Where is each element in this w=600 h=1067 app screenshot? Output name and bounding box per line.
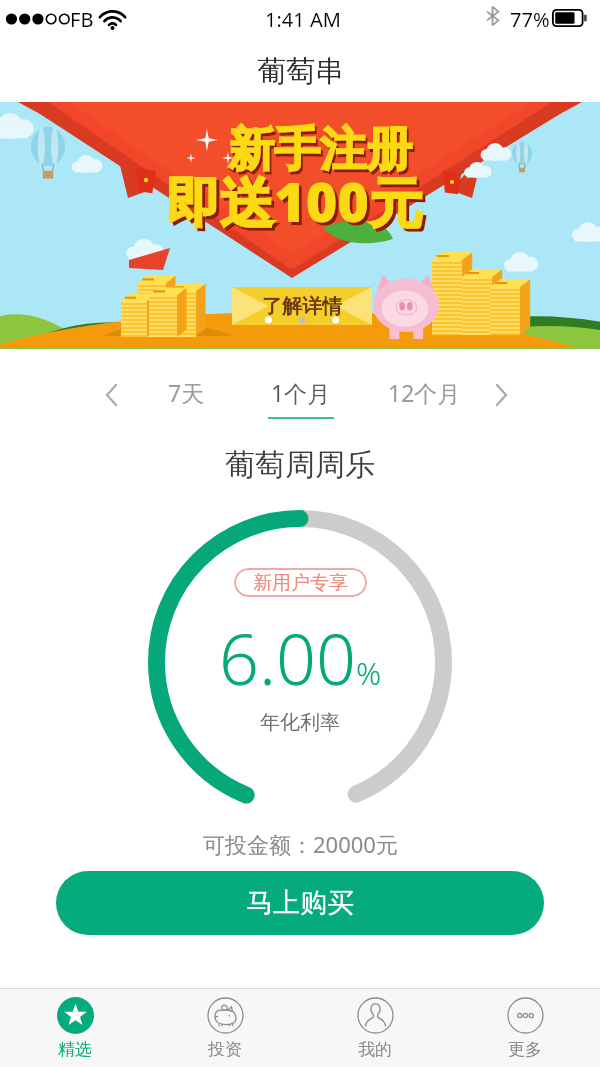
staticText: % [356,652,382,694]
staticText: 年化利率 [260,710,340,735]
button[interactable]: 7天 [141,372,231,428]
staticText: FB [70,6,94,33]
staticText: 6.00 [219,610,356,705]
button[interactable]: Previous [87,372,135,418]
button[interactable]: 我的 [300,989,450,1067]
staticText: 77% [510,6,550,33]
staticText: 12个月 [388,377,461,408]
staticText: 1:41 AM [265,6,341,33]
staticText: 精选 [58,1039,92,1060]
staticText: 葡萄周周乐 [225,446,375,484]
staticText: 1个月 [271,377,331,408]
staticText: 投资 [208,1039,242,1060]
button[interactable]: 了解详情 [232,287,372,325]
staticText: 我的 [358,1039,392,1060]
staticText: 即送100元 [169,167,426,241]
staticText: 马上购买 [246,886,354,920]
staticText: 更多 [508,1039,542,1060]
button[interactable]: 1个月 [256,372,346,428]
staticText: 即送100元 [166,164,423,238]
button[interactable]: 12个月 [379,372,469,428]
staticText: 新手注册 [230,124,414,182]
staticText: 新手注册 [228,121,412,179]
button[interactable]: 更多 [450,989,600,1067]
staticText: 新用户专享 [253,571,348,595]
button[interactable]: 精选 [0,989,150,1067]
button[interactable]: 投资 [150,989,300,1067]
staticText: 7天 [168,377,205,408]
button[interactable]: 新手注册即送100元 [0,102,600,342]
button[interactable]: Next [477,372,525,418]
staticText: 可投金额：20000元 [203,829,398,859]
button[interactable]: 马上购买 [56,871,544,935]
staticText: 了解详情 [262,294,342,319]
staticText: 葡萄串 [257,53,344,90]
